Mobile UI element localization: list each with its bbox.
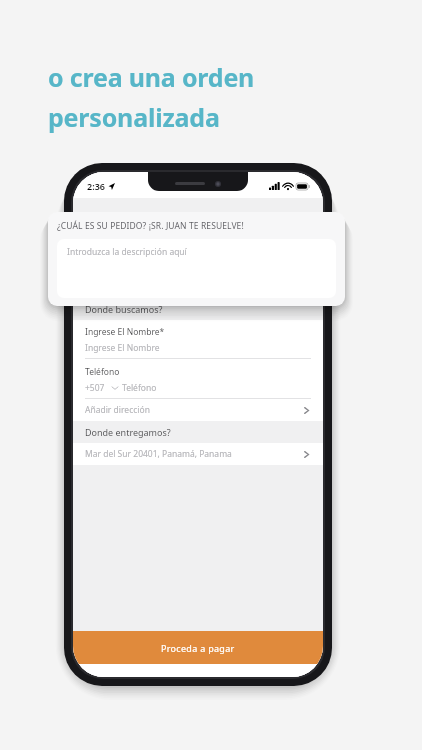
staticText: Ingrese El Nombre* [85, 326, 165, 338]
staticText: personalizada [48, 100, 220, 134]
staticText: Donde buscamos? [85, 303, 163, 315]
staticText: Introduzca la descripción aquí [67, 246, 187, 258]
button[interactable]: Mar del Sur 20401, Panamá, Panama [73, 443, 323, 465]
staticText: +507 [85, 382, 105, 394]
staticText: Mar del Sur 20401, Panamá, Panama [85, 448, 302, 460]
staticText: Teléfono [85, 366, 120, 378]
staticText: Teléfono [122, 382, 157, 394]
staticText: Ingrese El Nombre [85, 342, 160, 354]
staticText: Donde entregamos? [85, 426, 171, 438]
button[interactable]: Proceda a pagar [73, 631, 323, 664]
button[interactable]: Añadir dirección [73, 399, 323, 421]
staticText: Proceda a pagar [161, 642, 235, 654]
staticText: o crea una orden [48, 60, 255, 94]
staticText: ¿CUÁL ES SU PEDIDO? ¡SR. JUAN TE RESUELV… [57, 220, 244, 232]
staticText: 2:36 [87, 180, 105, 192]
button[interactable]: Introduzca la descripción aquí [57, 239, 336, 298]
staticText: Añadir dirección [85, 404, 302, 416]
